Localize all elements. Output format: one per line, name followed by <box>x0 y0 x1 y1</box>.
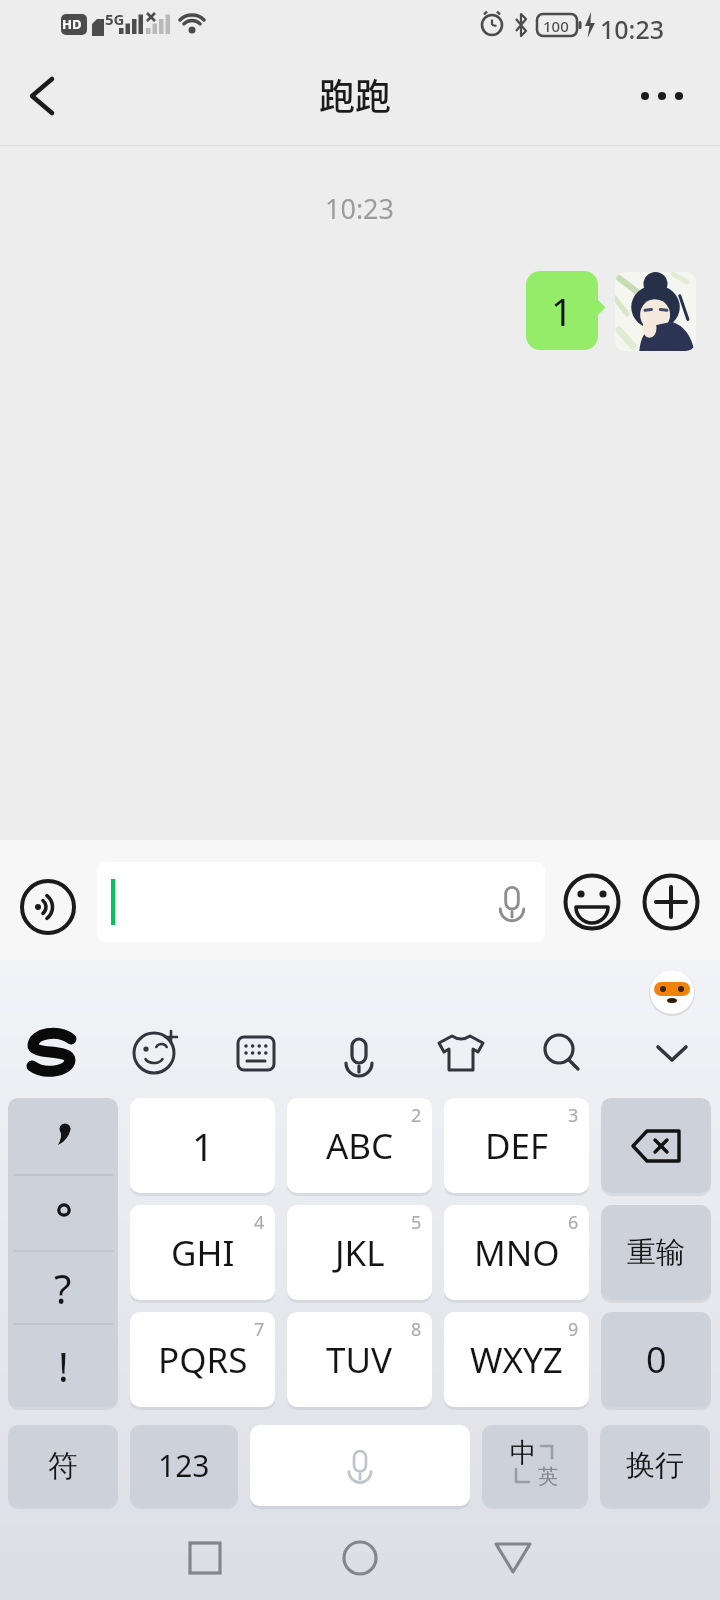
button[interactable] <box>639 1020 705 1086</box>
staticText: 换行 <box>626 1447 684 1484</box>
staticText: 跑跑 <box>319 68 392 120</box>
button[interactable] <box>250 1425 470 1506</box>
button[interactable]: 符 <box>8 1425 118 1506</box>
staticText: 0 <box>646 1335 667 1384</box>
button[interactable]: ? <box>8 1098 118 1407</box>
staticText: 10:23 <box>600 12 665 46</box>
staticText: 1 <box>192 1120 214 1172</box>
button[interactable] <box>223 1020 289 1086</box>
staticText: 5 <box>411 1210 422 1235</box>
staticText: 6 <box>568 1210 579 1235</box>
button[interactable]: 换行 <box>600 1425 710 1506</box>
button[interactable] <box>626 66 706 126</box>
button[interactable]: 0 <box>601 1312 711 1407</box>
button[interactable]: JKL <box>287 1205 432 1300</box>
button[interactable]: DEF <box>444 1098 589 1193</box>
button[interactable] <box>648 968 696 1016</box>
button[interactable]: MNO <box>444 1205 589 1300</box>
button[interactable] <box>121 1020 187 1086</box>
staticText: MNO <box>474 1229 560 1277</box>
staticText: JKL <box>335 1229 385 1277</box>
button[interactable]: 中 <box>482 1425 588 1506</box>
button[interactable] <box>559 869 625 935</box>
button[interactable]: TUV <box>287 1312 432 1407</box>
button[interactable]: 1 <box>526 271 598 350</box>
staticText: TUV <box>326 1336 393 1384</box>
staticText: DEF <box>485 1122 549 1170</box>
button[interactable]: ABC <box>287 1098 432 1193</box>
staticText: 10:23 <box>325 190 395 227</box>
staticText: PQRS <box>158 1336 248 1384</box>
button[interactable] <box>638 869 704 935</box>
staticText: 3 <box>568 1103 579 1128</box>
button[interactable] <box>328 1528 392 1588</box>
staticText: GHI <box>171 1229 235 1277</box>
staticText: 2 <box>411 1103 422 1128</box>
staticText: 4 <box>254 1210 265 1235</box>
staticText: 1 <box>551 285 573 337</box>
staticText: 符 <box>48 1447 78 1485</box>
staticText: HD <box>62 15 82 33</box>
button[interactable] <box>529 1020 595 1086</box>
staticText: 中 <box>510 1436 537 1470</box>
staticText: 英 <box>538 1464 558 1489</box>
button[interactable] <box>173 1528 237 1588</box>
button[interactable]: 1 <box>130 1098 275 1193</box>
staticText: WXYZ <box>470 1336 563 1384</box>
button[interactable] <box>428 1020 494 1086</box>
staticText: 重输 <box>627 1234 685 1271</box>
button[interactable] <box>601 1098 711 1193</box>
button[interactable] <box>615 272 696 351</box>
button[interactable] <box>14 66 74 126</box>
staticText: ABC <box>326 1122 394 1170</box>
button[interactable]: 重输 <box>601 1205 711 1300</box>
button[interactable] <box>19 1020 85 1086</box>
button[interactable]: PQRS <box>130 1312 275 1407</box>
button[interactable] <box>14 873 82 941</box>
button[interactable] <box>326 1020 392 1086</box>
button[interactable]: 123 <box>130 1425 238 1506</box>
button[interactable] <box>97 862 545 942</box>
button[interactable]: WXYZ <box>444 1312 589 1407</box>
staticText: 7 <box>254 1317 265 1342</box>
staticText: 5G <box>105 9 125 29</box>
staticText: ? <box>54 1261 72 1315</box>
staticText: 9 <box>568 1317 579 1342</box>
button[interactable]: GHI <box>130 1205 275 1300</box>
staticText: 100 <box>543 16 569 36</box>
button[interactable] <box>481 1528 545 1588</box>
staticText: 8 <box>411 1317 422 1342</box>
staticText: ! <box>58 1339 69 1393</box>
staticText: 123 <box>158 1445 210 1486</box>
